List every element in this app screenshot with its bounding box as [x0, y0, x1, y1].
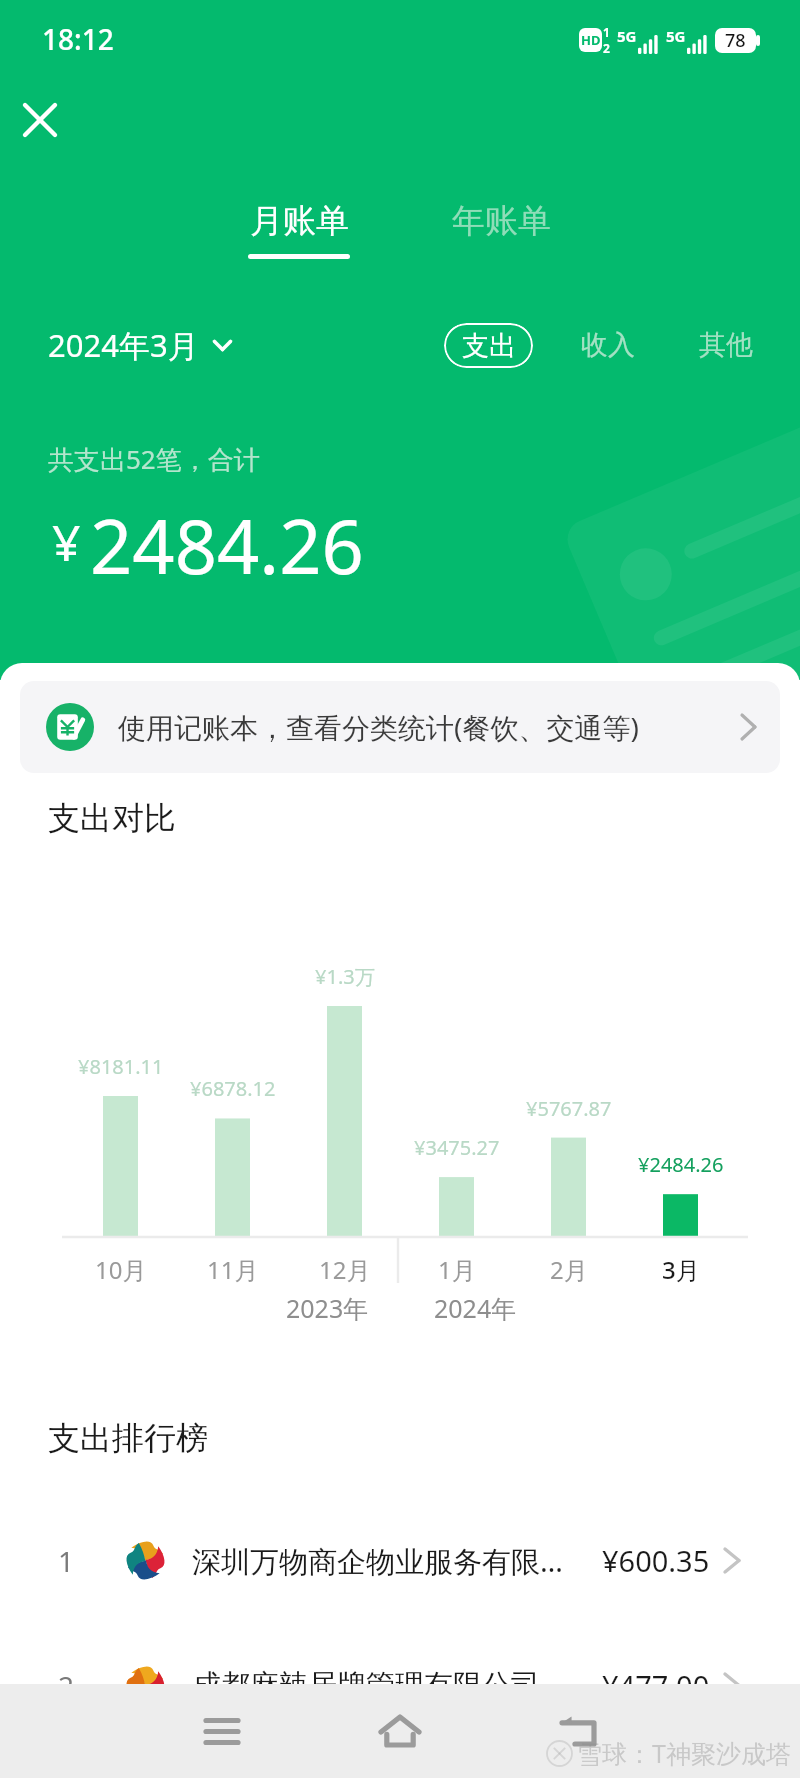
staticText: 支出排行榜	[48, 1418, 208, 1458]
staticText: 1月	[438, 1253, 476, 1286]
staticText: 使用记账本，查看分类统计(餐饮、交通等)	[118, 708, 639, 746]
staticText: 雪球：T神聚沙成塔	[577, 1736, 791, 1770]
staticText: 2023年	[286, 1291, 369, 1325]
staticText: 支出	[462, 329, 516, 363]
staticText: 10月	[95, 1253, 147, 1286]
staticText: ¥5767.87	[526, 1095, 612, 1122]
button[interactable]: 支出	[444, 323, 533, 368]
staticText: HD	[581, 31, 601, 49]
button[interactable]: Back	[536, 1689, 620, 1773]
button[interactable]: Home	[358, 1689, 442, 1773]
staticText: 月账单	[250, 200, 349, 242]
staticText: 其他	[699, 328, 753, 362]
staticText: 12月	[319, 1253, 371, 1286]
staticText: 1	[603, 24, 610, 40]
staticText: 2024年	[434, 1291, 517, 1325]
button[interactable]: 年账单	[444, 200, 558, 259]
staticText: ¥8181.11	[78, 1053, 164, 1080]
staticText: 2	[58, 1667, 75, 1705]
staticText: 成都麻辣居牌管理有限公司	[192, 1667, 572, 1704]
staticText: 3月	[662, 1253, 700, 1286]
button[interactable]: Close	[10, 90, 70, 150]
staticText: ¥6878.12	[190, 1075, 276, 1102]
button[interactable]: 1	[0, 1498, 800, 1623]
button[interactable]: 其他	[687, 318, 765, 372]
staticText: 11月	[207, 1253, 259, 1286]
staticText: ¥3475.27	[414, 1134, 500, 1161]
button[interactable]: 使用记账本，查看分类统计(餐饮、交通等)	[20, 681, 780, 773]
staticText: 2024年3月	[48, 324, 199, 366]
staticText: ¥2484.26	[638, 1151, 724, 1178]
button[interactable]: 收入	[569, 318, 647, 372]
staticText: ¥1.3万	[315, 963, 375, 990]
staticText: 收入	[581, 328, 635, 362]
staticText: 5G	[617, 26, 637, 46]
staticText: 深圳万物商企物业服务有限…	[192, 1541, 572, 1581]
button[interactable]: 2	[0, 1623, 800, 1748]
button[interactable]: 2024年3月	[40, 318, 240, 372]
staticText: 5G	[666, 26, 686, 46]
staticText: 78	[725, 28, 746, 53]
staticText: 2	[603, 40, 610, 56]
staticText: 18:12	[42, 20, 114, 58]
staticText: ¥600.35	[602, 1541, 710, 1580]
staticText: ¥	[52, 508, 81, 576]
button[interactable]: 月账单	[242, 200, 356, 259]
staticText: ¥477.00	[602, 1666, 710, 1705]
staticText: 共支出52笔，合计	[48, 441, 260, 477]
staticText: 2484.26	[90, 495, 364, 596]
staticText: 年账单	[452, 200, 551, 242]
button[interactable]: Recents	[180, 1689, 264, 1773]
staticText: 支出对比	[48, 798, 176, 838]
staticText: 2月	[550, 1253, 588, 1286]
staticText: 1	[58, 1542, 75, 1580]
